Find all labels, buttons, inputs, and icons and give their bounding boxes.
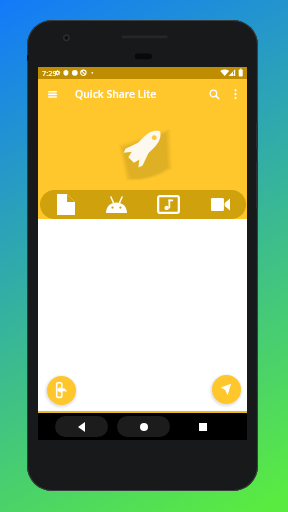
button[interactable]: Navigation menu	[38, 79, 66, 109]
button[interactable]: Back	[55, 416, 108, 437]
button[interactable]: Recent apps	[192, 416, 214, 437]
button[interactable]: Send files	[212, 375, 241, 404]
button[interactable]: More options	[226, 79, 245, 109]
button[interactable]: Videos	[194, 190, 246, 219]
button[interactable]: Receive files	[47, 376, 76, 405]
button[interactable]: Search	[202, 79, 226, 109]
staticText: 7:29	[42, 68, 57, 78]
button[interactable]: Files	[40, 190, 91, 219]
button[interactable]: Home	[117, 416, 170, 437]
staticText: Quick Share Lite	[75, 87, 157, 101]
button[interactable]: Apps	[91, 190, 142, 219]
button[interactable]: Music	[142, 190, 194, 219]
